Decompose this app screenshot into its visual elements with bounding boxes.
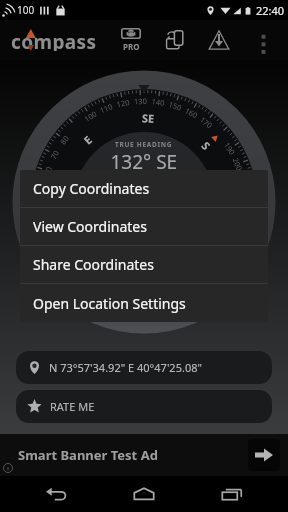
button[interactable]: More options (241, 20, 285, 60)
button[interactable]: Open Location Settings (20, 284, 268, 322)
button[interactable]: Home (113, 476, 175, 512)
button[interactable]: Ad info (3, 463, 13, 473)
button[interactable]: N 73°57'34.92" E 40°47'25.08" (16, 351, 272, 384)
button[interactable]: Recents (201, 476, 263, 512)
button[interactable]: Rotate screen (153, 20, 197, 60)
staticText: 100 (17, 3, 35, 17)
staticText: N 73°57'34.92" E 40°47'25.08" (49, 360, 202, 375)
button[interactable]: Compass (11, 29, 99, 51)
button[interactable]: Open ad (248, 439, 280, 471)
staticText: Copy Coordinates (33, 179, 150, 198)
button[interactable]: Copy Coordinates (20, 170, 268, 208)
button[interactable]: View Coordinates (20, 208, 268, 246)
button[interactable]: Share Coordinates (20, 246, 268, 284)
staticText: PRO (123, 41, 140, 52)
staticText: compass (11, 29, 97, 51)
staticText: 22:40 (256, 3, 285, 18)
staticText: RATE ME (50, 399, 95, 414)
button[interactable]: Back (26, 476, 88, 512)
button[interactable]: RATE ME (16, 390, 272, 423)
staticText: Open Location Settings (33, 294, 186, 313)
button[interactable]: Calibrate (197, 20, 241, 60)
staticText: View Coordinates (33, 217, 147, 236)
staticText: Smart Banner Test Ad (18, 446, 158, 464)
staticText: Share Coordinates (33, 255, 154, 274)
button[interactable]: Pro version (109, 20, 153, 60)
